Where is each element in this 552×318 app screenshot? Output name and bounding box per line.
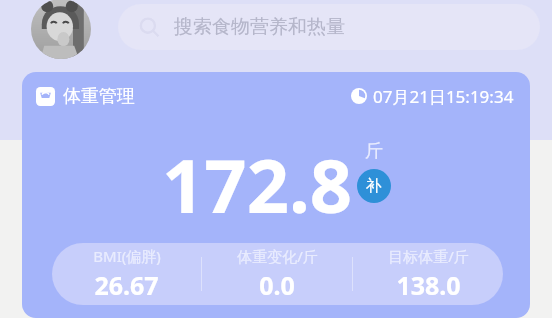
staticText: 26.67	[94, 268, 159, 302]
button[interactable]: BMI(偏胖)	[52, 243, 201, 305]
staticText: 138.0	[396, 268, 461, 302]
staticText: 07月21日15:19:34	[373, 85, 514, 108]
staticText: 0.0	[259, 268, 295, 302]
button[interactable]: 补	[357, 169, 391, 203]
button[interactable]: 目标体重/斤	[353, 243, 503, 305]
staticText: 体重管理	[63, 85, 135, 108]
button[interactable]: 体重管理	[22, 72, 530, 318]
button[interactable]: Profile	[31, 0, 91, 59]
staticText: BMI(偏胖)	[93, 246, 161, 266]
staticText: 体重变化/斤	[237, 246, 318, 266]
staticText: 补	[366, 176, 382, 196]
staticText: 搜索食物营养和热量	[174, 15, 345, 39]
button[interactable]: 搜索食物营养和热量	[118, 4, 540, 50]
staticText: 172.8	[162, 134, 353, 235]
staticText: 目标体重/斤	[388, 246, 469, 266]
button[interactable]: 体重变化/斤	[202, 243, 352, 305]
staticText: 斤	[365, 140, 383, 163]
